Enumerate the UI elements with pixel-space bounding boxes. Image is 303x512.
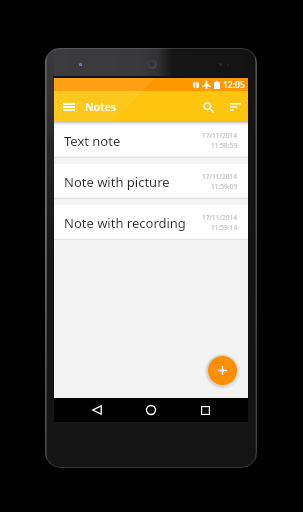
button[interactable]: Note with picture: [54, 164, 248, 199]
button[interactable]: Search: [197, 96, 219, 118]
button[interactable]: Recent apps: [194, 399, 216, 421]
staticText: 17/11/2014: [202, 131, 238, 140]
button[interactable]: Back: [86, 399, 108, 421]
staticText: 11:59:14: [211, 223, 238, 232]
button[interactable]: Sort: [224, 96, 246, 118]
button[interactable]: Open navigation drawer: [60, 98, 78, 116]
staticText: 11:59:09: [211, 182, 238, 191]
staticText: Text note: [64, 132, 121, 150]
staticText: Note with picture: [64, 173, 170, 191]
staticText: 11:58:59: [211, 141, 238, 150]
button[interactable]: Note with recording: [54, 205, 248, 240]
staticText: Notes: [85, 99, 117, 114]
staticText: Note with recording: [64, 214, 186, 232]
staticText: 17/11/2014: [202, 172, 238, 181]
button[interactable]: Add note: [208, 356, 237, 385]
staticText: 12:05: [223, 79, 245, 91]
staticText: 17/11/2014: [202, 213, 238, 222]
button[interactable]: Home: [140, 399, 162, 421]
button[interactable]: Text note: [54, 123, 248, 158]
